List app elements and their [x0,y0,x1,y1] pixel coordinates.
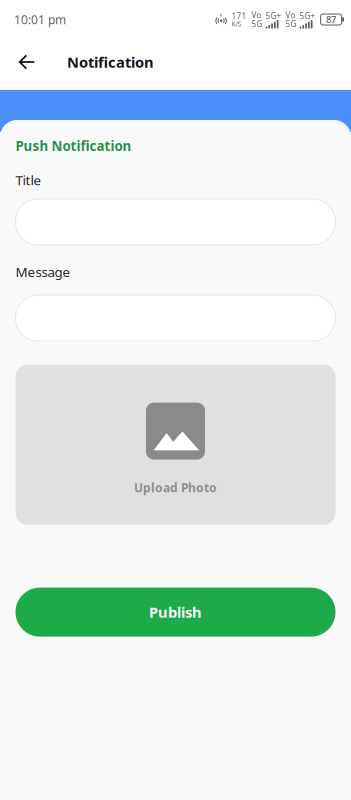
staticText: 5G+ [300,10,316,21]
staticText: K/S [232,19,242,28]
staticText: Publish [149,602,202,622]
staticText: Push Notification [15,137,131,155]
staticText: 5G [252,18,263,29]
staticText: Vo [252,10,262,20]
button[interactable]: Upload Photo [15,365,335,525]
staticText: 171 [232,11,247,21]
staticText: 10:01 pm [14,11,66,27]
staticText: Notification [67,52,154,72]
staticText: 5G [286,18,297,29]
button[interactable]: Publish [15,588,335,637]
button[interactable]: Message [15,295,335,341]
staticText: Message [15,263,70,281]
staticText: 87 [326,13,336,26]
staticText: Title [15,171,41,189]
staticText: 5G+ [266,10,282,21]
button[interactable]: Back [9,44,45,80]
staticText: Upload Photo [134,480,217,495]
staticText: Vo [286,10,296,20]
button[interactable]: Title [15,199,335,245]
